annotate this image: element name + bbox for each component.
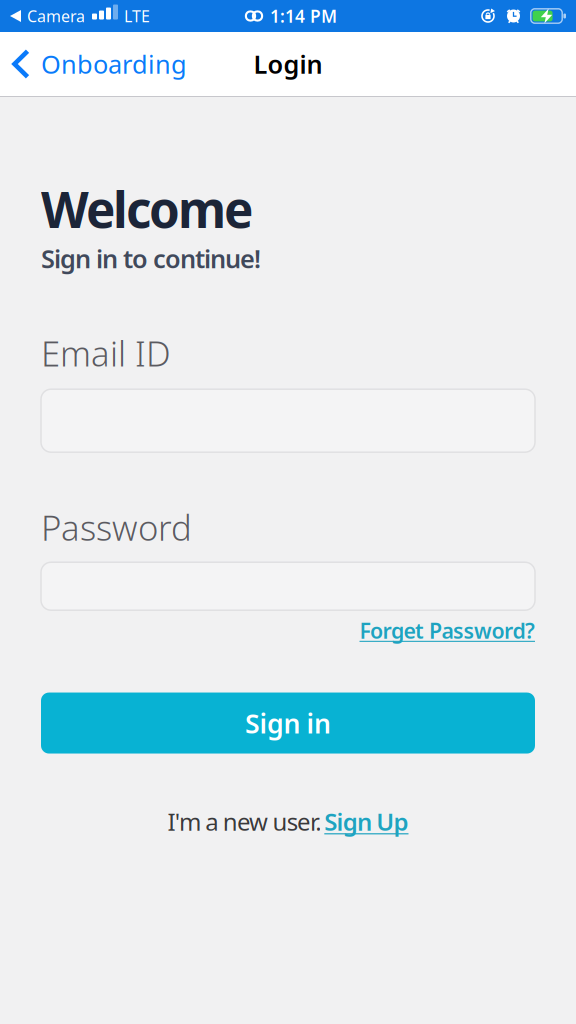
staticText: Password <box>41 504 192 550</box>
staticText: Sign Up <box>324 806 408 837</box>
staticText: LTE <box>124 5 150 27</box>
staticText: Sign in <box>245 705 331 741</box>
staticText: Welcome <box>41 176 253 241</box>
button[interactable]: Onboarding <box>0 47 187 81</box>
staticText: I'm a new user. <box>167 806 321 837</box>
staticText: Camera <box>27 5 85 27</box>
staticText: Email ID <box>41 330 171 376</box>
staticText: Forget Password? <box>359 616 535 644</box>
staticText: 1:14 PM <box>270 4 337 27</box>
button[interactable]: Forget Password? <box>359 616 535 644</box>
staticText: Sign in to continue! <box>41 241 261 275</box>
button[interactable]: Sign Up <box>324 806 408 837</box>
staticText: Onboarding <box>41 47 187 81</box>
staticText: Login <box>253 47 322 81</box>
button[interactable]: Sign in <box>41 693 535 754</box>
